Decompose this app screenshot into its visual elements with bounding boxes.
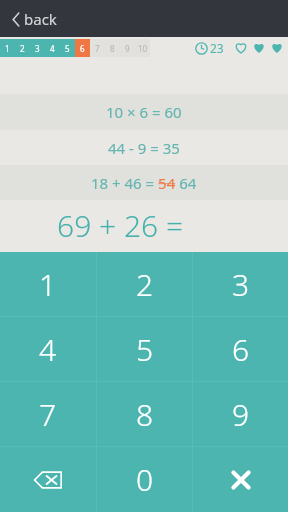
other: Timer bbox=[195, 42, 208, 55]
button[interactable]: 5 bbox=[60, 39, 75, 57]
button[interactable]: Backspace bbox=[0, 447, 96, 512]
button[interactable]: 9 bbox=[193, 382, 288, 446]
staticText: 18 + 46 = 54 64 bbox=[91, 173, 197, 193]
staticText: 8 bbox=[110, 43, 115, 54]
button[interactable]: 4 bbox=[0, 317, 96, 381]
staticText: 10 × 6 = 60 bbox=[106, 102, 182, 122]
staticText: 5 bbox=[65, 43, 70, 54]
staticText: 69 + 26 = bbox=[57, 205, 184, 246]
button[interactable]: 5 bbox=[97, 317, 192, 381]
button[interactable]: 7 bbox=[90, 39, 105, 57]
staticText: 5 bbox=[136, 329, 154, 370]
staticText: 8 bbox=[136, 394, 154, 435]
staticText: 2 bbox=[20, 43, 25, 54]
button[interactable]: 3 bbox=[30, 39, 45, 57]
button[interactable]: 7 bbox=[0, 382, 96, 446]
staticText: 3 bbox=[35, 43, 40, 54]
button[interactable]: 1 bbox=[0, 252, 96, 316]
button[interactable]: 2 bbox=[15, 39, 30, 57]
button[interactable]: 3 bbox=[193, 252, 288, 316]
staticText: 0 bbox=[136, 459, 154, 500]
button[interactable]: 10 bbox=[135, 39, 150, 57]
staticText: 7 bbox=[39, 394, 57, 435]
button[interactable]: 6 bbox=[193, 317, 288, 381]
button[interactable]: back bbox=[8, 5, 61, 33]
button[interactable]: Clear bbox=[193, 447, 288, 512]
button[interactable]: 9 bbox=[120, 39, 135, 57]
staticText: 1 bbox=[39, 264, 57, 305]
staticText: 4 bbox=[50, 43, 55, 54]
button[interactable]: 2 bbox=[97, 252, 192, 316]
staticText: 7 bbox=[95, 43, 100, 54]
staticText: 9 bbox=[125, 43, 130, 54]
staticText: 4 bbox=[39, 329, 57, 370]
button[interactable]: 6 bbox=[75, 39, 90, 57]
button[interactable]: 4 bbox=[45, 39, 60, 57]
other: Life bbox=[270, 41, 284, 55]
other: Lost life bbox=[234, 41, 248, 55]
button[interactable]: 8 bbox=[97, 382, 192, 446]
staticText: back bbox=[24, 9, 57, 29]
button[interactable]: 0 bbox=[97, 447, 192, 512]
button[interactable]: 1 bbox=[0, 39, 15, 57]
button[interactable]: 8 bbox=[105, 39, 120, 57]
staticText: 44 - 9 = 35 bbox=[108, 138, 180, 158]
staticText: 6 bbox=[80, 43, 85, 54]
staticText: 6 bbox=[232, 329, 250, 370]
staticText: 9 bbox=[232, 394, 250, 435]
staticText: 10 bbox=[138, 43, 148, 54]
staticText: 23 bbox=[210, 40, 224, 56]
other: Life bbox=[252, 41, 266, 55]
staticText: 1 bbox=[5, 43, 10, 54]
staticText: 2 bbox=[136, 264, 154, 305]
staticText: 3 bbox=[232, 264, 250, 305]
